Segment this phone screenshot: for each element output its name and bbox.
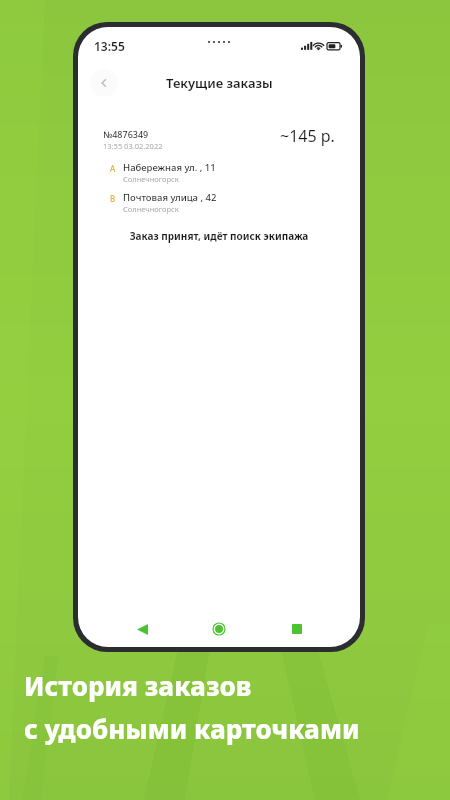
button[interactable]: Home bbox=[205, 615, 233, 643]
staticText: История заказов bbox=[24, 668, 252, 703]
staticText: Почтовая улица , 42 bbox=[123, 191, 217, 204]
staticText: Текущие заказы bbox=[166, 74, 273, 92]
staticText: ~145 р. bbox=[280, 125, 335, 147]
staticText: №4876349 bbox=[103, 128, 149, 140]
staticText: с удобными карточками bbox=[24, 711, 360, 746]
staticText: Солнечногорск bbox=[123, 174, 179, 184]
staticText: Солнечногорск bbox=[123, 204, 179, 214]
staticText: Заказ принят, идёт поиск экипажа bbox=[107, 229, 331, 243]
button[interactable]: B bbox=[103, 191, 335, 214]
staticText: 13:55 bbox=[94, 38, 125, 54]
button[interactable]: Back bbox=[128, 615, 156, 643]
button[interactable]: A bbox=[103, 161, 335, 184]
button[interactable]: Recent apps bbox=[283, 615, 311, 643]
button[interactable]: №4876349 bbox=[91, 117, 347, 270]
staticText: 13:55 03.02.2022 bbox=[103, 141, 163, 151]
staticText: A bbox=[110, 163, 116, 174]
button[interactable]: Назад bbox=[90, 69, 118, 97]
staticText: B bbox=[110, 193, 116, 204]
staticText: Набережная ул. , 11 bbox=[123, 161, 216, 174]
